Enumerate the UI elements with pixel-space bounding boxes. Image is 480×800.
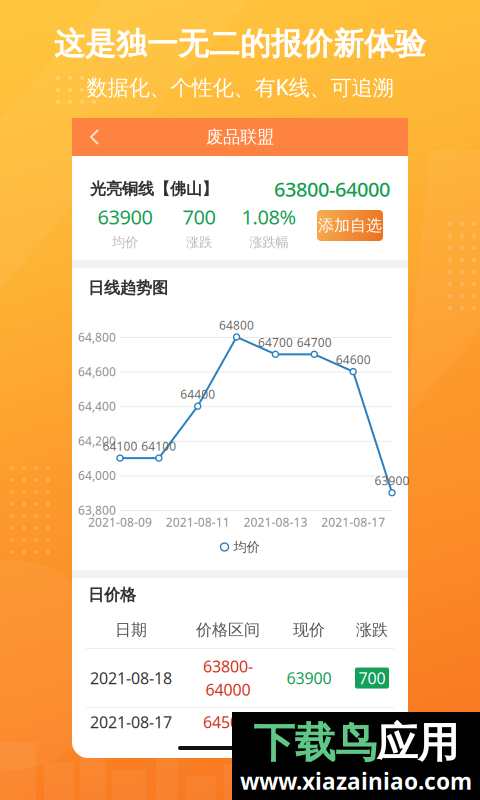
- staticText: 废品联盟: [206, 126, 274, 148]
- staticText: 700: [182, 203, 215, 230]
- staticText: 日线趋势图: [88, 278, 168, 298]
- staticText: 2021-08-18: [90, 667, 172, 689]
- button[interactable]: Back: [80, 118, 110, 156]
- staticText: 下载鸟: [253, 718, 376, 768]
- staticText: 64,000: [78, 467, 116, 483]
- staticText: 64000: [205, 679, 250, 700]
- staticText: 日期: [115, 620, 147, 640]
- staticText: 日价格: [88, 585, 136, 605]
- staticText: 64700: [258, 334, 293, 350]
- staticText: 2021-08-17: [90, 711, 172, 733]
- staticText: 2021-08-09: [88, 514, 152, 530]
- staticText: 63900: [374, 473, 409, 489]
- staticText: 涨跌: [356, 620, 388, 640]
- staticText: www.xiazainiao.com: [240, 766, 472, 796]
- staticText: 63800-: [203, 656, 253, 677]
- staticText: 2021-08-13: [243, 514, 307, 530]
- staticText: 光亮铜线【佛山】: [90, 179, 218, 199]
- staticText: 数据化、个性化、有K线、可追溯: [86, 73, 393, 101]
- staticText: 价格区间: [196, 620, 260, 640]
- staticText: 64100: [141, 438, 176, 454]
- staticText: 涨跌: [186, 234, 212, 250]
- staticText: 均价: [233, 539, 259, 555]
- staticText: 现价: [293, 620, 325, 640]
- staticText: 63800-64000: [274, 176, 390, 202]
- staticText: 64500-: [203, 711, 253, 733]
- staticText: 64700: [297, 334, 332, 350]
- staticText: 2021-08-17: [321, 514, 385, 530]
- staticText: 700: [358, 667, 385, 689]
- staticText: 64400: [180, 386, 215, 402]
- staticText: 64,400: [78, 398, 116, 414]
- staticText: 应用: [376, 718, 458, 768]
- button[interactable]: 添加自选: [317, 210, 383, 241]
- staticText: 64,600: [78, 364, 116, 379]
- staticText: 63900: [286, 667, 331, 689]
- staticText: 2021-08-11: [166, 514, 230, 530]
- staticText: 64800: [219, 317, 254, 333]
- staticText: 64,200: [78, 433, 116, 449]
- staticText: 均价: [112, 234, 138, 250]
- staticText: 添加自选: [318, 216, 382, 235]
- staticText: 涨跌幅: [249, 234, 288, 250]
- staticText: 63,800: [78, 502, 116, 518]
- staticText: 1.08%: [241, 203, 296, 230]
- staticText: 63900: [97, 203, 152, 230]
- staticText: 这是独一无二的报价新体验: [54, 25, 426, 63]
- staticText: 64600: [336, 352, 371, 367]
- staticText: 64100: [102, 438, 137, 454]
- staticText: 64,800: [78, 329, 116, 345]
